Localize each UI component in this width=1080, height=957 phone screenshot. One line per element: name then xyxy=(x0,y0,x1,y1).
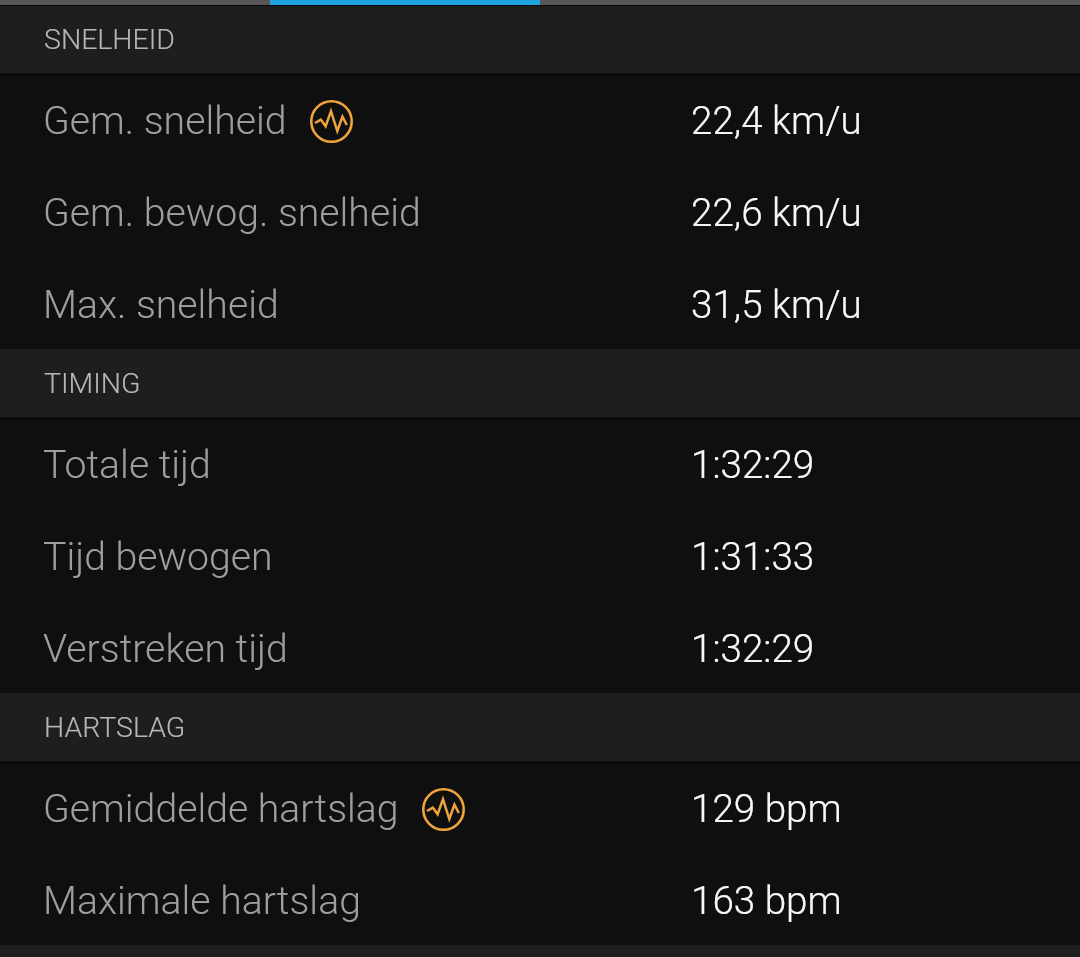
staticText: 1:32:29 xyxy=(691,626,815,671)
staticText: Gem. snelheid xyxy=(43,98,287,144)
staticText: HARTSLAG xyxy=(44,711,186,744)
staticText: Tijd bewogen xyxy=(43,534,273,580)
staticText: Verstreken tijd xyxy=(43,626,288,672)
button[interactable]: Gem. snelheid xyxy=(0,73,1080,165)
other: Hartslaggrafiek xyxy=(422,788,465,831)
button[interactable]: Maximale hartslag xyxy=(0,853,1080,945)
staticText: 129 bpm xyxy=(691,786,842,831)
staticText: 31,5 km/u xyxy=(691,282,862,327)
staticText: 1:31:33 xyxy=(691,534,815,579)
staticText: SNELHEID xyxy=(44,23,176,56)
staticText: Totale tijd xyxy=(43,442,211,488)
staticText: 163 bpm xyxy=(691,878,842,923)
button[interactable]: Totale tijd xyxy=(0,417,1080,509)
button[interactable]: Tijd bewogen xyxy=(0,509,1080,601)
button[interactable]: Max. snelheid xyxy=(0,257,1080,349)
button[interactable]: Gemiddelde hartslag xyxy=(0,761,1080,853)
staticText: 1:32:29 xyxy=(691,442,815,487)
button[interactable]: Gem. bewog. snelheid xyxy=(0,165,1080,257)
staticText: Maximale hartslag xyxy=(43,878,361,924)
other: Hartslaggrafiek xyxy=(310,100,353,143)
staticText: Gem. bewog. snelheid xyxy=(43,190,421,236)
staticText: Gemiddelde hartslag xyxy=(43,786,399,832)
button[interactable]: Verstreken tijd xyxy=(0,601,1080,693)
staticText: Max. snelheid xyxy=(43,282,279,328)
staticText: TIMING xyxy=(44,367,141,400)
staticText: 22,4 km/u xyxy=(691,98,862,143)
staticText: 22,6 km/u xyxy=(691,190,862,235)
